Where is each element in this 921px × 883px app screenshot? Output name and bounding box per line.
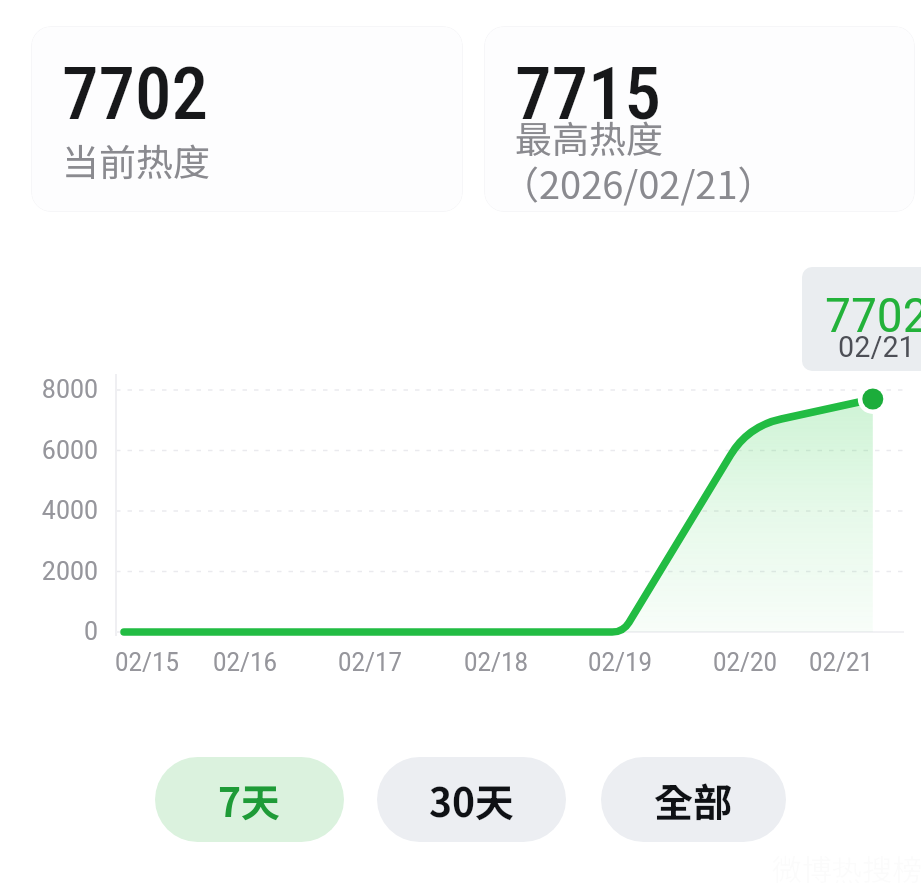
staticText: 02/16 bbox=[200, 648, 290, 677]
button[interactable]: 全部 bbox=[601, 757, 786, 842]
staticText: 最高热度 bbox=[515, 110, 663, 164]
staticText: 02/21 bbox=[838, 329, 915, 364]
staticText: 7天 bbox=[218, 772, 281, 828]
staticText: 02/20 bbox=[700, 648, 790, 677]
staticText: 4000 bbox=[28, 495, 98, 525]
button[interactable]: 7702 on 02/21 bbox=[802, 267, 921, 371]
staticText: 当前热度 bbox=[62, 133, 210, 187]
staticText: 8000 bbox=[28, 374, 98, 404]
staticText: 7702 bbox=[825, 287, 921, 343]
staticText: 02/19 bbox=[575, 648, 665, 677]
button[interactable]: 7702 bbox=[31, 26, 463, 212]
staticText: （2026/02/21） bbox=[501, 155, 776, 210]
button[interactable]: 7715 bbox=[484, 26, 915, 212]
staticText: 30天 bbox=[429, 772, 515, 828]
staticText: 7702 bbox=[62, 51, 209, 137]
staticText: 2000 bbox=[28, 556, 98, 586]
staticText: 全部 bbox=[654, 772, 733, 828]
staticText: 02/21 bbox=[796, 648, 886, 677]
button[interactable]: 30天 bbox=[377, 757, 566, 842]
staticText: 02/17 bbox=[325, 648, 415, 677]
staticText: 0 bbox=[28, 616, 98, 646]
staticText: 02/15 bbox=[102, 648, 192, 677]
staticText: 6000 bbox=[28, 435, 98, 465]
staticText: 02/18 bbox=[451, 648, 541, 677]
button[interactable]: 7天 bbox=[155, 757, 344, 842]
staticText: 7715 bbox=[515, 51, 662, 137]
